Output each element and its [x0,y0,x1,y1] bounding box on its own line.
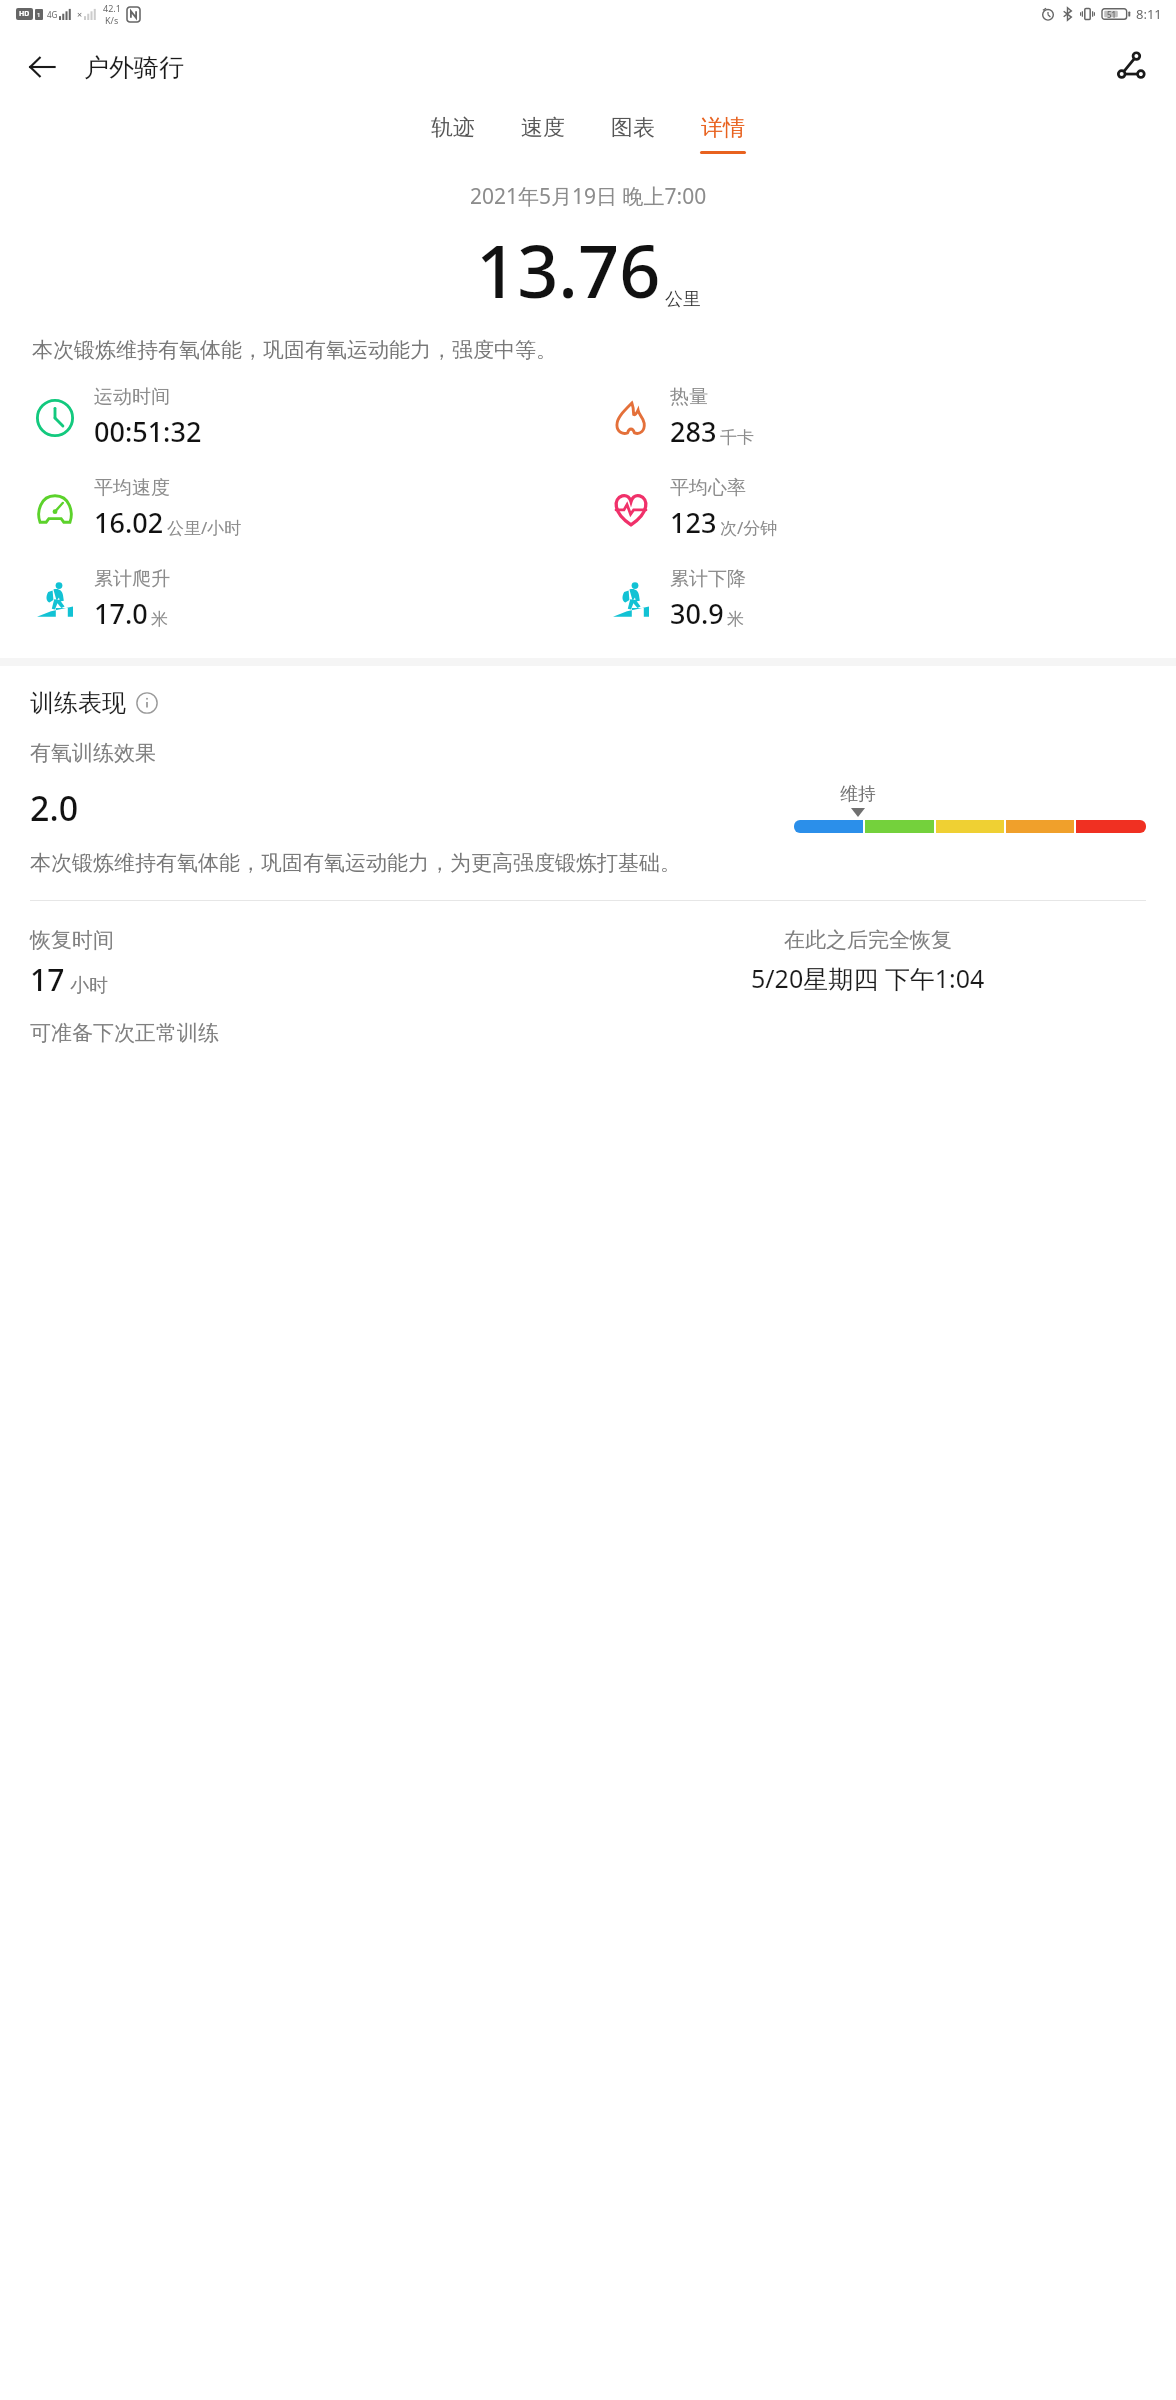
staticText: 维持 [840,783,876,806]
staticText: 小时 [70,974,108,998]
staticText: 热量 [670,385,708,409]
staticText: 恢复时间 [30,927,114,953]
staticText: 公里/小时 [167,516,242,539]
button[interactable]: 平均心率 [606,476,778,541]
staticText: 8:11 [1136,5,1162,23]
staticText: 训练表现 [30,688,126,718]
staticText: 本次锻炼维持有氧体能，巩固有氧运动能力，为更高强度锻炼打基础。 [30,850,1146,876]
staticText: 图表 [611,114,655,142]
staticText: 有氧训练效果 [30,740,156,766]
button[interactable]: 训练表现 [30,688,158,718]
staticText: 00:51:32 [94,413,202,450]
button[interactable]: 速度 [520,106,566,154]
button[interactable]: 累计爬升 [30,567,170,632]
staticText: 可准备下次正常训练 [30,1020,219,1046]
button[interactable]: 运动时间 [30,385,202,450]
button[interactable]: Share [1102,39,1158,95]
staticText: 米 [151,609,168,630]
staticText: × [77,8,83,20]
staticText: 16.02 [94,504,164,541]
staticText: 公里 [665,288,701,311]
staticText: 米 [727,609,744,630]
staticText: 户外骑行 [84,52,184,83]
button[interactable]: 详情 [700,106,746,154]
staticText: 4G [47,9,58,20]
staticText: 51 [1107,9,1117,20]
other: Info [136,692,158,714]
staticText: 平均速度 [94,476,170,500]
button[interactable]: 热量 [606,385,754,450]
staticText: 30.9 [670,595,724,632]
staticText: 千卡 [720,427,754,448]
button[interactable]: 轨迹 [430,106,476,154]
staticText: 5/20星期四 下午1:04 [751,961,985,995]
staticText: 在此之后完全恢复 [784,927,952,953]
button[interactable]: 图表 [610,106,656,154]
button[interactable]: 平均速度 [30,476,242,541]
staticText: 次/分钟 [720,516,778,539]
button[interactable]: 累计下降 [606,567,746,632]
staticText: K/s [105,14,119,26]
staticText: HD [19,9,30,19]
staticText: 13.76 [476,221,661,319]
button[interactable]: Back [14,39,70,95]
staticText: 2.0 [30,785,79,831]
staticText: 运动时间 [94,385,170,409]
staticText: 轨迹 [431,114,475,142]
staticText: 17 [30,959,65,1000]
staticText: 1 [37,11,41,19]
staticText: 累计爬升 [94,567,170,591]
staticText: 累计下降 [670,567,746,591]
staticText: 2021年5月19日 晚上7:00 [470,182,707,211]
staticText: 平均心率 [670,476,746,500]
staticText: 42.1 [103,2,121,14]
staticText: 本次锻炼维持有氧体能，巩固有氧运动能力，强度中等。 [32,337,1144,363]
staticText: 17.0 [94,595,148,632]
staticText: 283 [670,413,717,450]
staticText: 123 [670,504,717,541]
staticText: 速度 [521,114,565,142]
staticText: 详情 [701,114,745,142]
